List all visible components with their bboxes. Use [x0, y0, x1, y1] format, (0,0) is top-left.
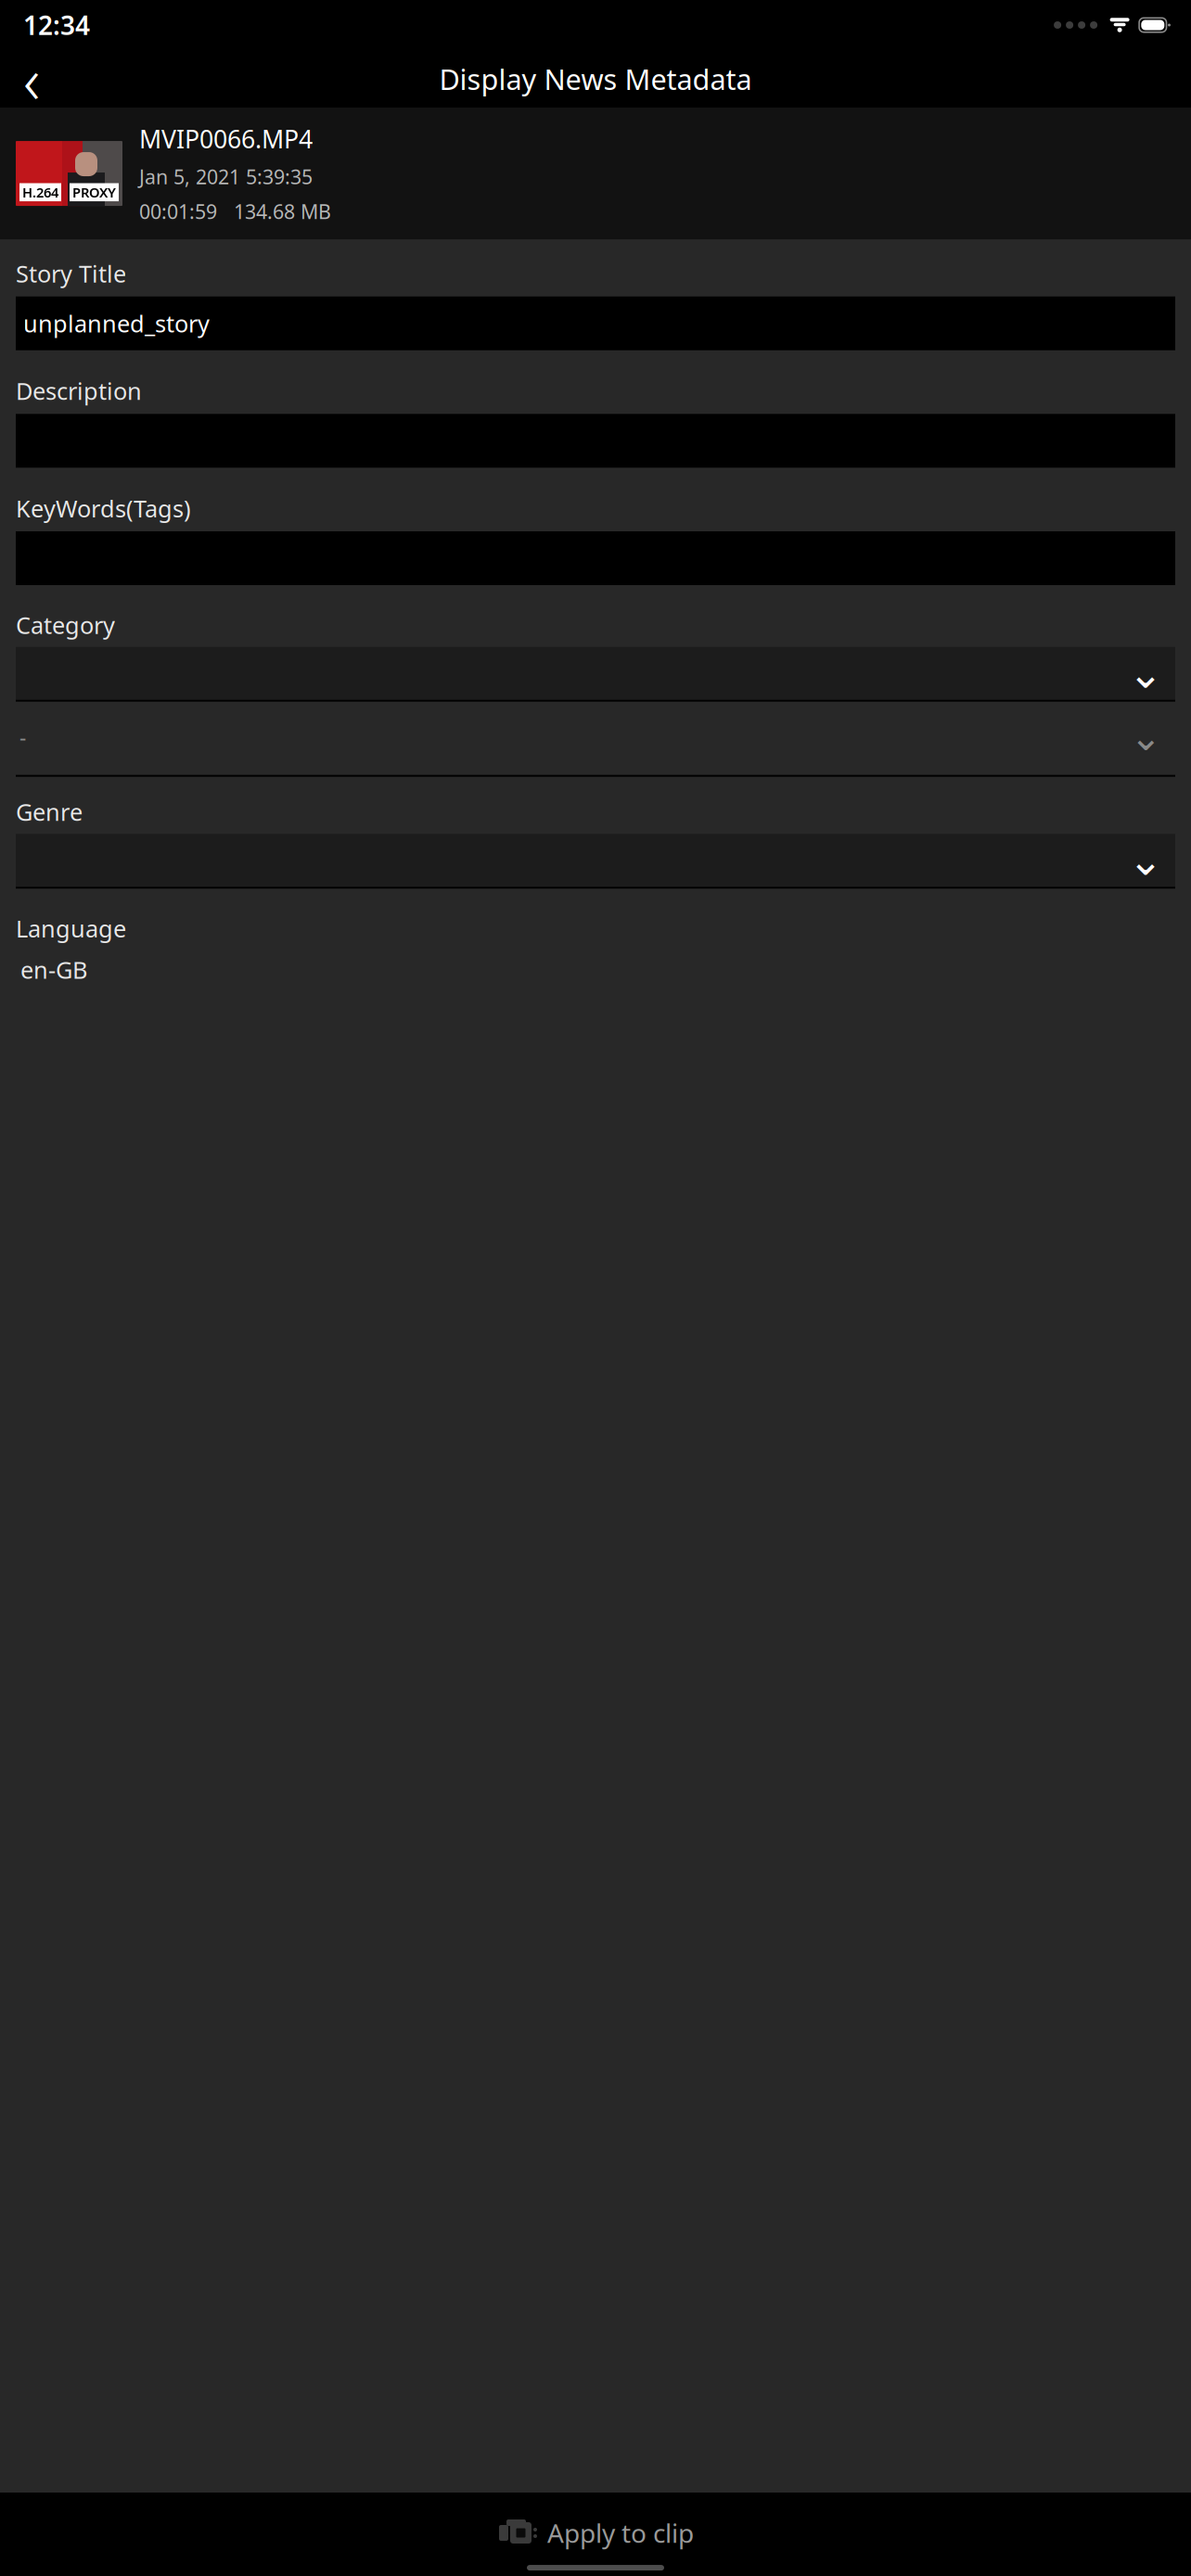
staticText: ⌄	[1128, 649, 1163, 697]
staticText: MVIP0066.MP4	[139, 122, 313, 155]
button[interactable]: ⌄	[16, 647, 1175, 702]
button[interactable]: unplanned_story	[16, 296, 1175, 350]
staticText: 00:01:59 134.68 MB	[139, 198, 331, 224]
staticText: PROXY	[72, 183, 116, 201]
button[interactable]	[16, 531, 1175, 585]
staticText: unplanned_story	[23, 308, 210, 339]
staticText: 12:34	[23, 8, 90, 42]
staticText: Display News Metadata	[439, 60, 752, 98]
staticText: Description	[16, 375, 142, 406]
staticText: ⌄	[1128, 837, 1163, 884]
staticText: Genre	[16, 796, 83, 827]
staticText: KeyWords(Tags)	[16, 493, 191, 524]
staticText: -	[19, 723, 26, 751]
staticText: Jan 5, 2021 5:39:35	[139, 164, 313, 190]
staticText: H.264	[22, 183, 58, 201]
button[interactable]: ⌄	[16, 834, 1175, 889]
staticText: Apply to clip	[547, 2516, 694, 2550]
staticText: ⌄	[1130, 715, 1162, 759]
button[interactable]: Apply to clip	[479, 2508, 712, 2558]
staticText: Story Title	[16, 258, 126, 289]
button[interactable]: -	[16, 711, 1175, 777]
staticText: en-GB	[20, 954, 87, 985]
staticText: Language	[16, 913, 126, 944]
button[interactable]: Back	[6, 53, 58, 105]
staticText: Category	[16, 609, 115, 640]
staticText: ‹	[23, 36, 40, 122]
